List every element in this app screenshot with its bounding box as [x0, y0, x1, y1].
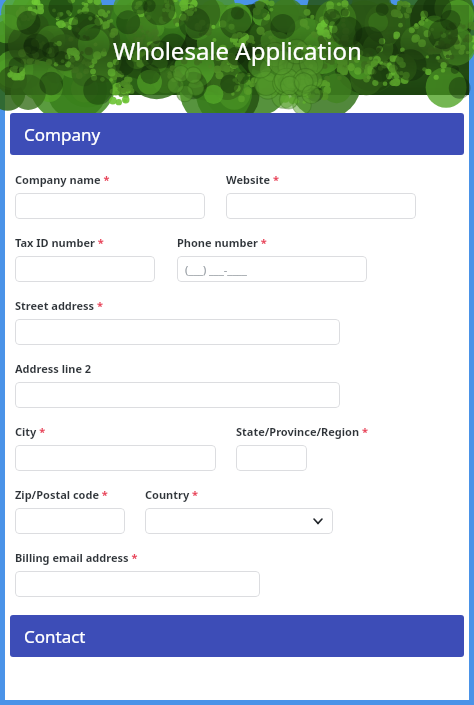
button[interactable] — [15, 382, 340, 408]
button[interactable] — [15, 508, 125, 534]
button[interactable] — [15, 319, 340, 345]
button[interactable]: Company — [10, 113, 464, 155]
staticText: Address line 2 — [15, 361, 92, 376]
button[interactable] — [15, 256, 155, 282]
button[interactable]: Open country list — [145, 508, 333, 534]
button[interactable] — [15, 571, 260, 597]
staticText: (___) ___-____ — [185, 262, 247, 277]
button[interactable] — [15, 445, 216, 471]
button[interactable]: (___) ___-____ — [177, 256, 367, 282]
staticText: Billing email address * — [15, 550, 138, 565]
staticText: Website * — [226, 172, 279, 187]
staticText: Zip/Postal code * — [15, 487, 108, 502]
button[interactable]: Contact — [10, 615, 464, 657]
staticText: Phone number * — [177, 235, 267, 250]
staticText: Company name * — [15, 172, 110, 187]
staticText: City * — [15, 424, 46, 439]
staticText: Street address * — [15, 298, 103, 313]
staticText: State/Province/Region * — [236, 424, 368, 439]
button[interactable] — [15, 193, 205, 219]
staticText: Company — [24, 123, 101, 146]
button[interactable] — [226, 193, 416, 219]
staticText: Wholesale Application — [113, 34, 362, 67]
staticText: Country * — [145, 487, 199, 502]
button[interactable] — [236, 445, 307, 471]
staticText: Tax ID number * — [15, 235, 104, 250]
staticText: Contact — [24, 625, 86, 648]
other: Open country list — [311, 514, 325, 528]
